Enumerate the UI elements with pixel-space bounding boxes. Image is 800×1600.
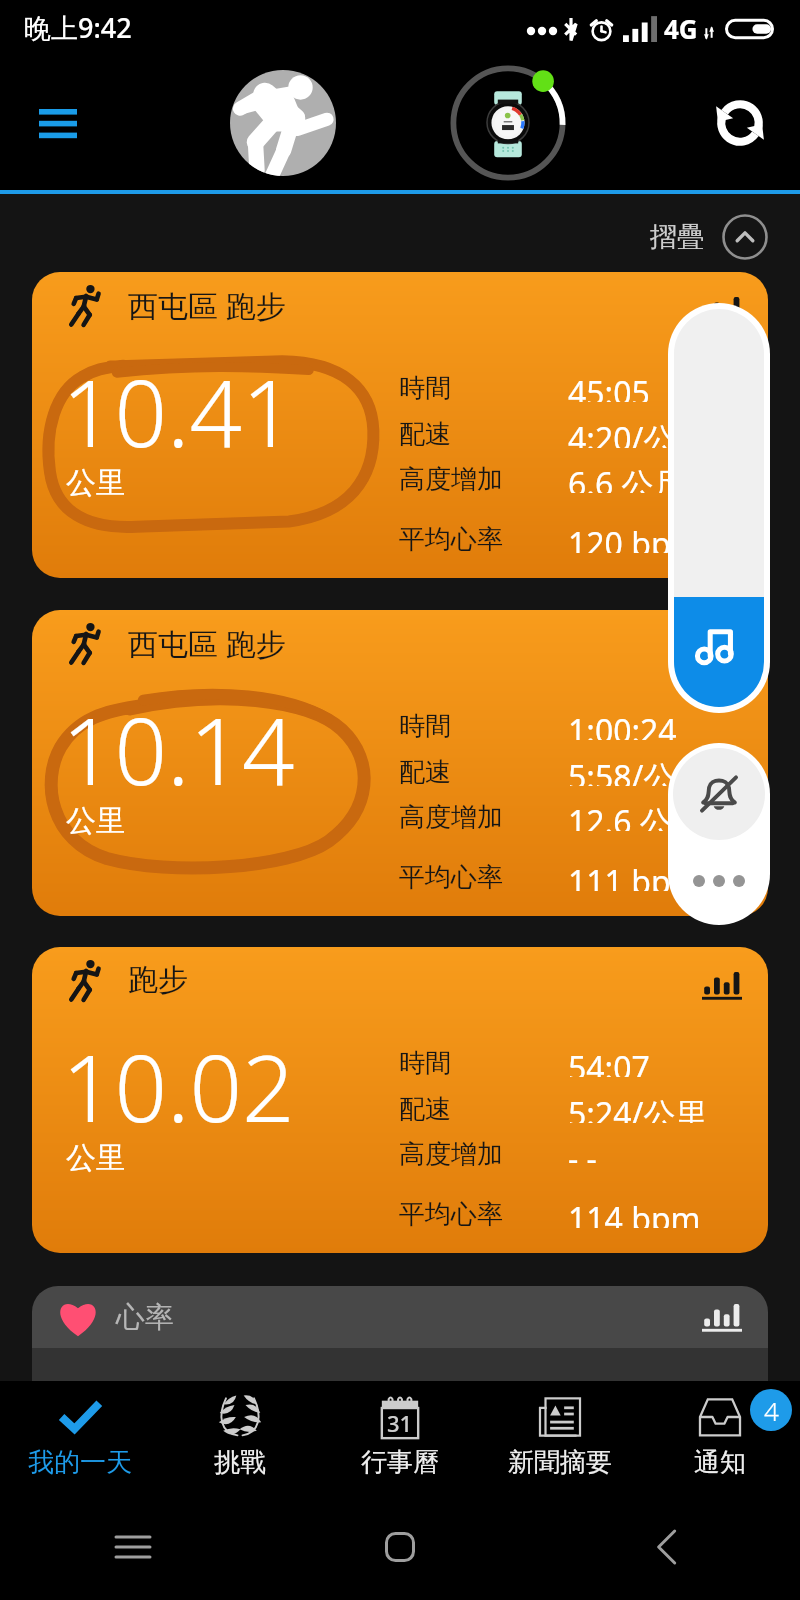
staticText: 公里	[66, 802, 126, 840]
staticText: 平均心率	[399, 523, 503, 554]
staticText: 時間	[399, 372, 451, 403]
staticText: 10.02	[62, 1024, 295, 1149]
button[interactable]: Device status	[448, 63, 568, 183]
staticText: 配速	[399, 756, 451, 787]
button[interactable]: 31	[320, 1381, 480, 1493]
staticText: 4:20/公里	[568, 417, 708, 448]
staticText: 心率	[116, 1299, 174, 1336]
staticText: 5:24/公里	[568, 1092, 708, 1123]
staticText: 5:58/公里	[568, 755, 708, 786]
staticText: 12.6 公尺	[568, 800, 704, 831]
staticText: 111 bpm	[568, 860, 701, 891]
staticText: 公里	[66, 1139, 126, 1177]
staticText: 6.6 公尺	[568, 462, 686, 493]
button[interactable]: Volume	[668, 303, 770, 713]
staticText: 高度增加	[399, 463, 503, 494]
staticText: 120 bpm	[568, 522, 701, 553]
staticText: 4G	[664, 11, 698, 46]
staticText: 1:00:24	[568, 709, 677, 740]
staticText: 時間	[399, 710, 451, 741]
staticText: 通知	[694, 1446, 746, 1479]
staticText: 時間	[399, 1047, 451, 1078]
staticText: 54:07	[568, 1046, 650, 1077]
button[interactable]: 西屯區 跑步	[32, 272, 768, 578]
staticText: 行事曆	[361, 1446, 439, 1479]
staticText: 45:05	[568, 371, 650, 402]
staticText: 新聞摘要	[508, 1446, 612, 1479]
staticText: 西屯區 跑步	[128, 285, 286, 326]
button[interactable]: Mute	[673, 748, 765, 840]
staticText: 配速	[399, 1093, 451, 1124]
button[interactable]: More options	[668, 845, 770, 925]
button[interactable]: Profile	[230, 70, 336, 176]
button[interactable]: Chart	[698, 628, 746, 668]
button[interactable]: Sync	[702, 85, 778, 161]
staticText: 公里	[66, 464, 126, 502]
staticText: 挑戰	[214, 1446, 266, 1479]
staticText: 我的一天	[28, 1446, 132, 1479]
button[interactable]: Chart	[698, 965, 746, 1005]
staticText: 平均心率	[399, 861, 503, 892]
staticText: 高度增加	[399, 1138, 503, 1169]
staticText: 114 bpm	[568, 1197, 701, 1228]
button[interactable]: 通知	[640, 1381, 800, 1493]
staticText: 摺疊	[650, 220, 704, 254]
staticText: 高度增加	[399, 801, 503, 832]
button[interactable]: Back	[533, 1493, 800, 1600]
button[interactable]: Menu	[22, 87, 94, 159]
button[interactable]: 心率	[32, 1286, 768, 1348]
button[interactable]: Chart	[698, 290, 746, 330]
button[interactable]: Home	[266, 1493, 533, 1600]
button[interactable]: 西屯區 跑步	[32, 610, 768, 916]
staticText: 跑步	[128, 961, 188, 999]
staticText: 31	[387, 1408, 413, 1438]
button[interactable]: 跑步	[32, 947, 768, 1253]
button[interactable]: Recents	[0, 1493, 266, 1600]
staticText: 晚上9:42	[24, 9, 132, 46]
staticText: 配速	[399, 418, 451, 449]
staticText: - -	[568, 1137, 597, 1168]
button[interactable]: 新聞摘要	[480, 1381, 640, 1493]
button[interactable]: 摺疊	[632, 206, 786, 268]
staticText: 10.41	[62, 349, 295, 474]
button[interactable]: 我的一天	[0, 1381, 160, 1493]
staticText: 西屯區 跑步	[128, 623, 286, 664]
staticText: 10.14	[62, 687, 295, 812]
button[interactable]: 挑戰	[160, 1381, 320, 1493]
staticText: 平均心率	[399, 1198, 503, 1229]
staticText: 4	[764, 1393, 779, 1428]
